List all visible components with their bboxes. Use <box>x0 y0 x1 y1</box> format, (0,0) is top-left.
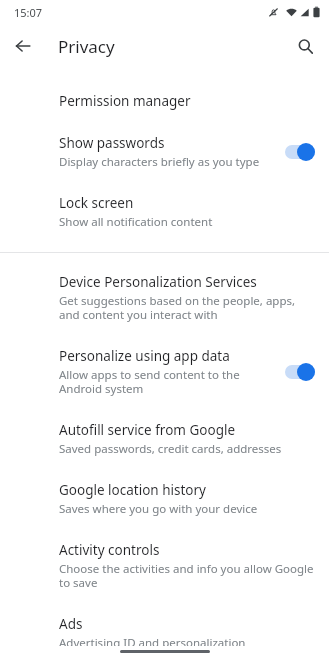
staticText: Privacy <box>58 35 115 58</box>
staticText: Show passwords <box>59 134 165 152</box>
staticText: Google location history <box>59 481 206 499</box>
staticText: Saves where you go with your device <box>59 501 258 517</box>
button[interactable]: Show passwords <box>0 122 329 182</box>
button[interactable]: Permission manager <box>0 80 329 122</box>
staticText: 15:07 <box>14 5 43 20</box>
button[interactable]: Activity controls <box>0 529 329 603</box>
staticText: Lock screen <box>59 194 134 212</box>
staticText: Choose the activities and info you allow… <box>59 561 315 591</box>
staticText: Ads <box>59 615 83 633</box>
staticText: Autofill service from Google <box>59 421 236 439</box>
button[interactable]: Back <box>6 29 40 63</box>
staticText: Device Personalization Services <box>59 273 257 291</box>
button[interactable]: Ads <box>0 603 329 658</box>
button[interactable]: Search <box>288 29 322 63</box>
staticText: Saved passwords, credit cards, addresses <box>59 441 282 457</box>
staticText: Display characters briefly as you type <box>59 154 260 170</box>
button[interactable]: Autofill service from Google <box>0 409 329 469</box>
staticText: Get suggestions based on the people, app… <box>59 293 315 323</box>
button[interactable]: Toggle <box>285 143 315 161</box>
staticText: Permission manager <box>59 92 191 110</box>
button[interactable]: Google location history <box>0 469 329 529</box>
button[interactable]: Personalize using app data <box>0 335 329 409</box>
button[interactable]: Toggle <box>285 363 315 381</box>
staticText: Personalize using app data <box>59 347 230 365</box>
button[interactable]: Device Personalization Services <box>0 261 329 335</box>
staticText: Advertising ID and personalization <box>59 635 246 646</box>
staticText: Allow apps to send content to the Androi… <box>59 367 240 397</box>
button[interactable]: Lock screen <box>0 182 329 242</box>
staticText: Activity controls <box>59 541 160 559</box>
staticText: Show all notification content <box>59 214 213 230</box>
